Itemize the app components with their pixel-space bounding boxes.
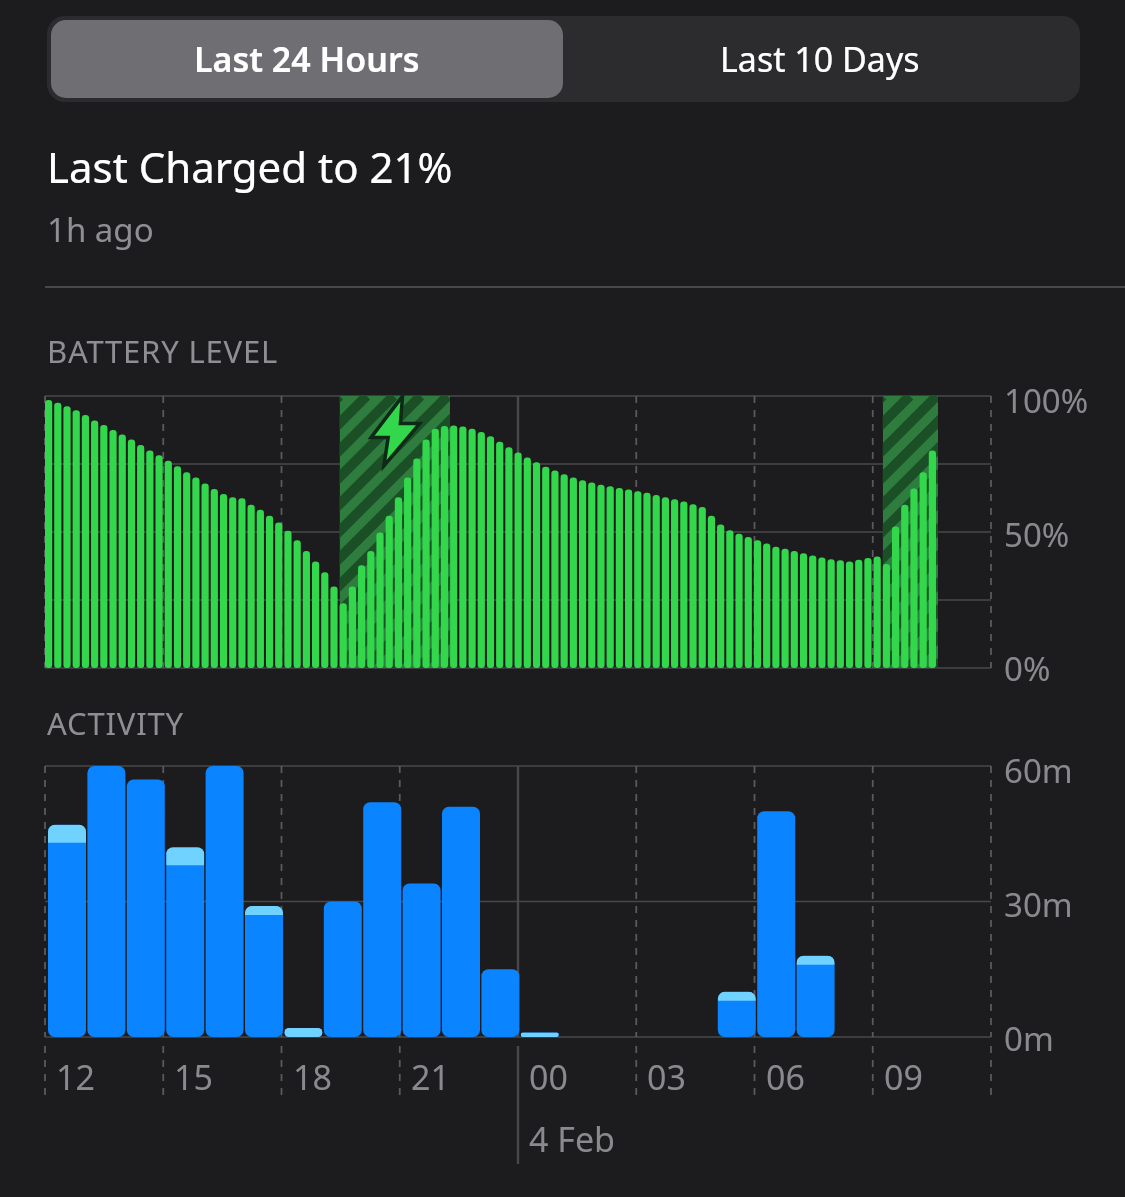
staticText: 03	[647, 1054, 686, 1100]
staticText: 0%	[1004, 646, 1051, 691]
staticText: 100%	[1004, 378, 1089, 423]
staticText: 4 Feb	[529, 1116, 616, 1162]
staticText: Last 24 Hours	[194, 36, 420, 82]
staticText: Last Charged to 21%	[47, 138, 453, 195]
staticText: 06	[766, 1054, 805, 1100]
staticText: 12	[56, 1054, 95, 1100]
button[interactable]: Last 10 Days	[563, 20, 1076, 98]
staticText: 30m	[1004, 882, 1073, 927]
staticText: 0m	[1004, 1016, 1054, 1061]
staticText: 18	[293, 1054, 332, 1100]
staticText: 50%	[1004, 512, 1070, 557]
staticText: 00	[529, 1054, 568, 1100]
staticText: ACTIVITY	[47, 702, 184, 744]
staticText: 21	[411, 1054, 450, 1100]
staticText: 15	[174, 1054, 213, 1100]
staticText: 09	[884, 1054, 923, 1100]
button[interactable]: Last 24 Hours	[51, 20, 563, 98]
staticText: Last 10 Days	[720, 36, 920, 82]
staticText: 1h ago	[47, 207, 154, 252]
staticText: 60m	[1004, 748, 1073, 793]
staticText: BATTERY LEVEL	[47, 330, 278, 372]
